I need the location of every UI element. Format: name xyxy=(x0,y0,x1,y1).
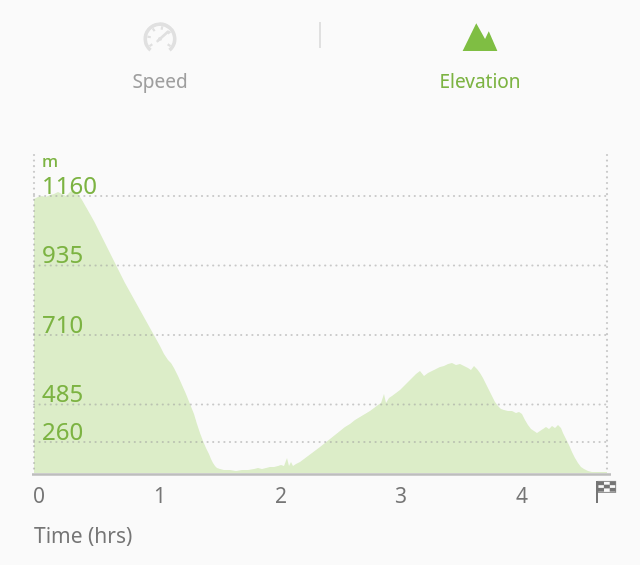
staticText: 0 xyxy=(19,481,59,510)
staticText: 2 xyxy=(261,481,301,510)
staticText: 485 xyxy=(42,376,84,409)
staticText: Speed xyxy=(132,68,188,94)
staticText: Elevation xyxy=(439,68,521,94)
staticText: 260 xyxy=(42,414,84,447)
button[interactable]: Elevation xyxy=(320,0,640,112)
staticText: 4 xyxy=(502,481,542,510)
button[interactable]: Speed xyxy=(0,0,320,112)
staticText: 1160 xyxy=(42,168,97,201)
staticText: m xyxy=(42,149,59,172)
staticText: 935 xyxy=(42,237,84,270)
staticText: 3 xyxy=(381,481,421,510)
staticText: 1 xyxy=(140,481,180,510)
staticText: 710 xyxy=(42,307,84,340)
staticText: Time (hrs) xyxy=(34,521,133,550)
